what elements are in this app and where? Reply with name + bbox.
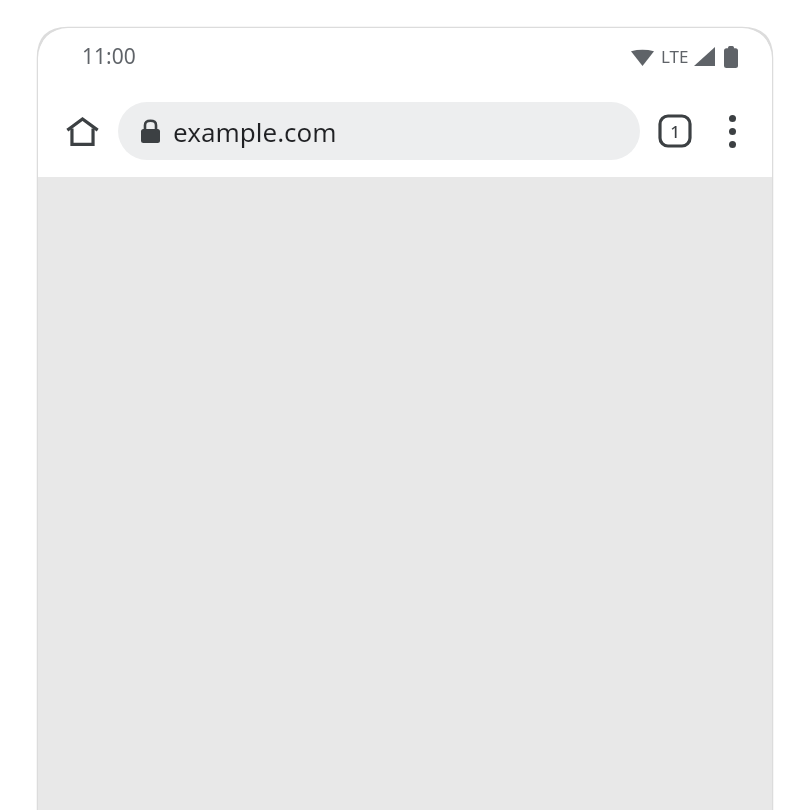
button[interactable]: example.com (118, 102, 640, 160)
staticText: 11:00 (82, 42, 136, 71)
staticText: 1 (670, 120, 680, 143)
button[interactable]: Tabs, 1 open (653, 109, 697, 153)
staticText: example.com (173, 114, 337, 149)
button[interactable]: More options (710, 109, 754, 153)
button[interactable]: Home (60, 109, 104, 153)
staticText: LTE (661, 45, 689, 68)
